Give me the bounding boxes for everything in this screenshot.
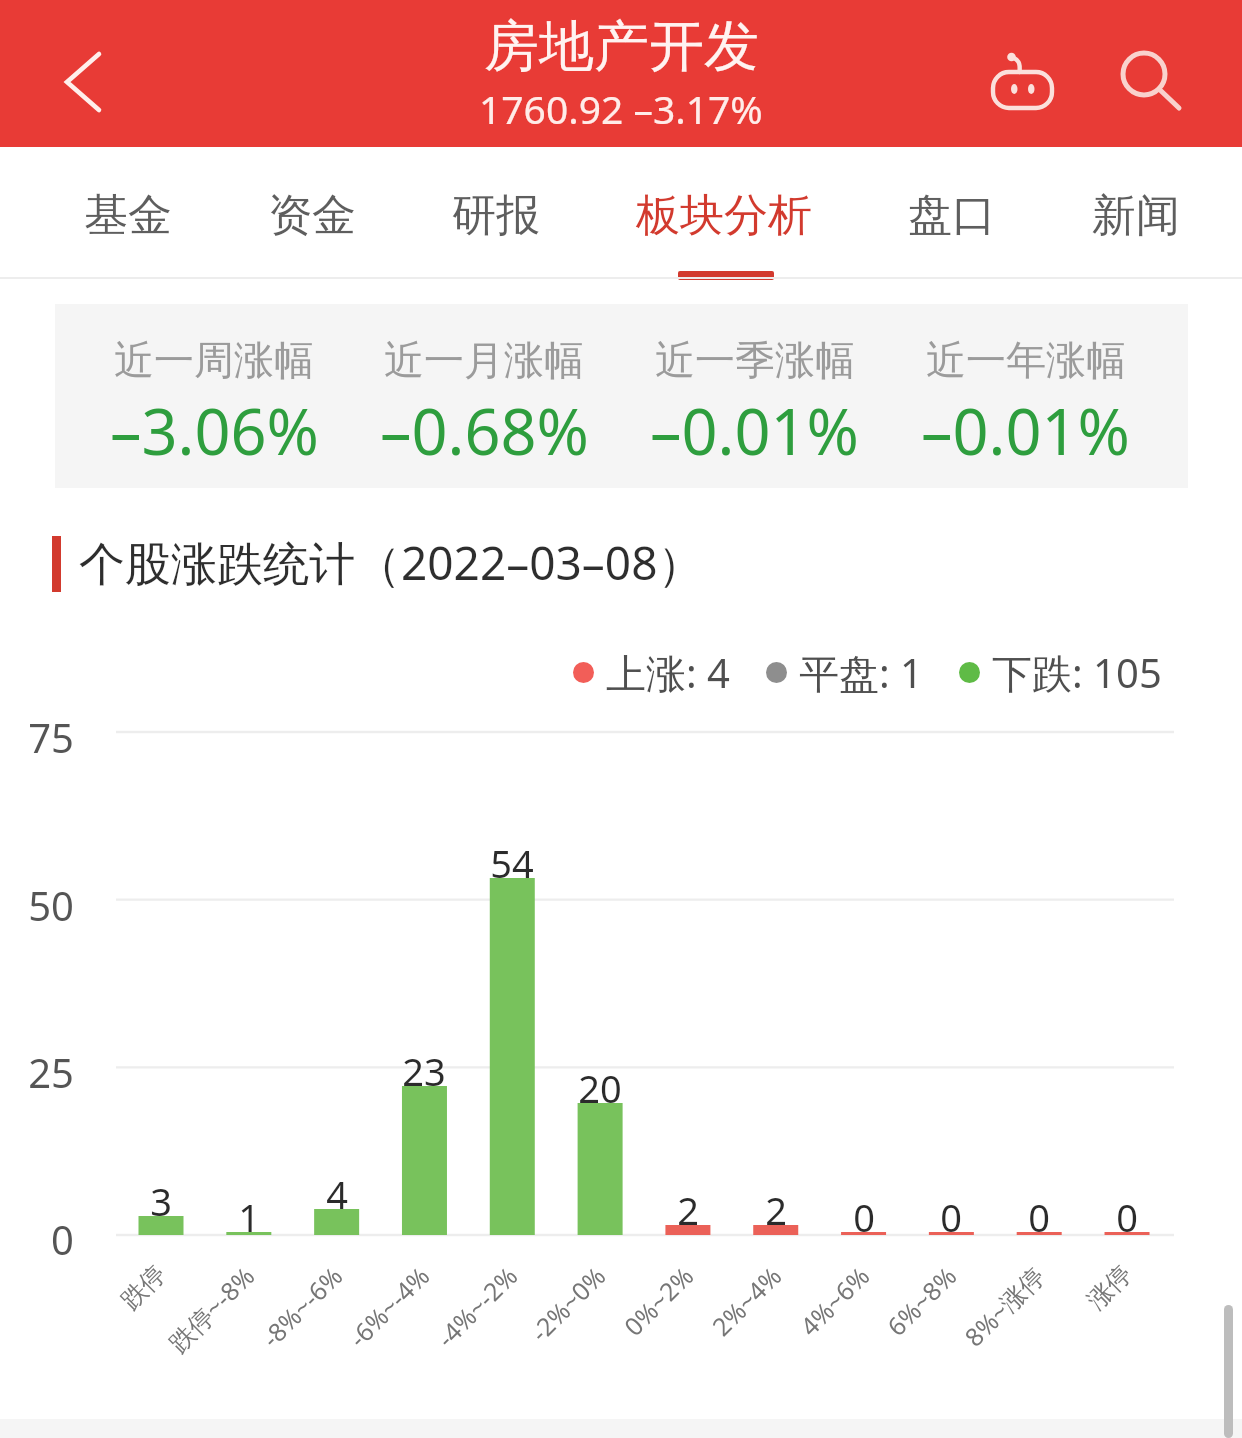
staticText: 平盘: 1 (799, 645, 923, 700)
staticText: 4 (326, 1168, 348, 1220)
staticText: 涨停 (1081, 1258, 1138, 1316)
staticText: 50 (28, 878, 74, 932)
staticText: 6%~8% (879, 1259, 963, 1343)
staticText: 0 (940, 1191, 962, 1243)
staticText: 8%~涨停 (956, 1259, 1051, 1354)
staticText: –0.01% (921, 388, 1130, 474)
button[interactable]: 平盘: 1 (766, 645, 923, 700)
staticText: 近一月涨幅 (384, 335, 584, 385)
staticText: 2 (765, 1184, 787, 1236)
button[interactable]: 下跌: 105 (959, 645, 1162, 700)
button[interactable]: 研报 (427, 147, 565, 279)
staticText: 基金 (84, 188, 172, 243)
staticText: 23 (402, 1045, 446, 1097)
staticText: 0 (1116, 1191, 1138, 1243)
button[interactable]: 上涨: 4 (573, 645, 730, 700)
staticText: -8%~-6% (254, 1259, 349, 1354)
button[interactable]: 基金 (59, 147, 197, 279)
button[interactable]: 近一周涨幅 (79, 335, 349, 474)
staticText: 0 (51, 1212, 74, 1266)
staticText: 0%~2% (616, 1259, 700, 1343)
staticText: 25 (28, 1045, 74, 1099)
staticText: 1 (238, 1191, 260, 1243)
staticText: 房地产开发 (484, 12, 759, 81)
button[interactable]: Back (0, 0, 160, 147)
button[interactable]: 近一季涨幅 (619, 335, 890, 474)
staticText: 2 (677, 1184, 699, 1236)
staticText: 0 (853, 1191, 875, 1243)
staticText: 板块分析 (636, 188, 812, 243)
button[interactable]: 盘口 (883, 147, 1021, 279)
staticText: –0.68% (380, 388, 589, 474)
staticText: 上涨: 4 (606, 645, 730, 700)
staticText: 3 (150, 1175, 172, 1227)
button[interactable]: 新闻 (1067, 147, 1205, 279)
staticText: –3.06% (110, 388, 319, 474)
staticText: -6%~-4% (341, 1259, 436, 1354)
button[interactable]: 近一年涨幅 (890, 335, 1161, 474)
staticText: 跌停 (115, 1258, 172, 1316)
staticText: 跌停~-8% (161, 1259, 261, 1359)
staticText: 1760.92 –3.17% (479, 82, 763, 135)
staticText: -2%~0% (522, 1259, 612, 1349)
staticText: 0 (1028, 1191, 1050, 1243)
staticText: 新闻 (1092, 188, 1180, 243)
staticText: 资金 (268, 188, 356, 243)
staticText: 75 (28, 710, 74, 764)
staticText: 近一季涨幅 (655, 335, 855, 385)
staticText: –0.01% (650, 388, 859, 474)
button[interactable]: 板块分析 (611, 147, 837, 279)
staticText: 个股涨跌统计（2022–03–08） (79, 531, 704, 594)
staticText: 20 (578, 1062, 622, 1114)
staticText: 研报 (452, 188, 540, 243)
button[interactable]: 近一月涨幅 (349, 335, 619, 474)
staticText: 近一年涨幅 (926, 335, 1126, 385)
button[interactable]: Search (1090, 19, 1210, 129)
staticText: -4%~-2% (429, 1259, 524, 1354)
staticText: 下跌: 105 (992, 645, 1162, 700)
staticText: 近一周涨幅 (114, 335, 314, 385)
staticText: 盘口 (908, 188, 996, 243)
staticText: 2%~4% (704, 1259, 788, 1343)
button[interactable]: AI assistant (962, 19, 1082, 129)
button[interactable]: 资金 (243, 147, 381, 279)
staticText: 54 (490, 837, 534, 889)
staticText: 4%~6% (792, 1259, 876, 1343)
